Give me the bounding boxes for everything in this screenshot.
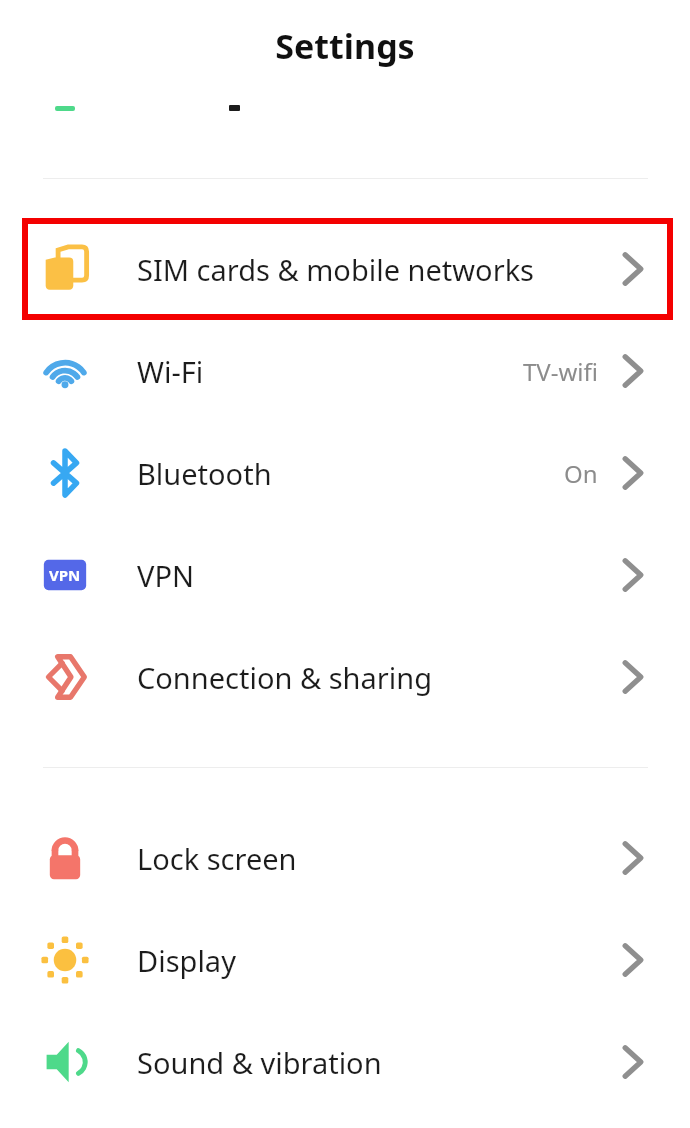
button[interactable]: Lock screen	[0, 807, 690, 909]
staticText: On	[564, 457, 598, 490]
staticText: Sound & vibration	[137, 1043, 382, 1082]
button[interactable]: Sound & vibration	[0, 1011, 690, 1113]
staticText: Wi-Fi	[137, 352, 204, 391]
button[interactable]: Display	[0, 909, 690, 1011]
button[interactable]: Connection & sharing	[0, 626, 690, 728]
staticText: Settings	[275, 23, 415, 69]
staticText: Display	[137, 941, 236, 980]
staticText: Lock screen	[137, 839, 297, 878]
staticText: TV-wifi	[523, 355, 598, 388]
button[interactable]: VPN	[0, 524, 690, 626]
button[interactable]: Previous setting	[0, 92, 690, 178]
staticText: Connection & sharing	[137, 658, 433, 697]
staticText: VPN	[137, 556, 194, 595]
button[interactable]: SIM cards & mobile networks	[0, 218, 690, 320]
button[interactable]: Bluetooth	[0, 422, 690, 524]
staticText: Bluetooth	[137, 454, 272, 493]
staticText: SIM cards & mobile networks	[137, 250, 535, 289]
staticText: VPN	[49, 565, 81, 585]
button[interactable]: Wi-Fi	[0, 320, 690, 422]
